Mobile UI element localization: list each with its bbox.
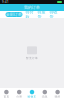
- button[interactable]: 全部订单: [5, 12, 22, 17]
- staticText: 我的: [55, 95, 61, 98]
- button[interactable]: 待付款: [24, 12, 34, 17]
- staticText: 分类: [16, 95, 22, 98]
- button[interactable]: 购物车: [26, 90, 38, 98]
- staticText: 待收货: [49, 10, 57, 19]
- button[interactable]: 消息: [38, 90, 51, 98]
- staticText: 待付款: [25, 10, 33, 19]
- staticText: 购物车: [27, 95, 36, 98]
- button[interactable]: 待收货: [48, 12, 58, 17]
- staticText: 消息: [42, 95, 48, 98]
- staticText: 全部订单: [6, 12, 22, 17]
- button[interactable]: 首页: [0, 90, 13, 98]
- staticText: 待发货: [37, 10, 45, 19]
- staticText: 暂无订单: [26, 56, 38, 60]
- button[interactable]: 待发货: [36, 12, 46, 17]
- button[interactable]: 分类: [13, 90, 26, 98]
- staticText: 我的订单: [24, 5, 40, 10]
- staticText: 首页: [3, 95, 9, 98]
- button[interactable]: 我的: [51, 90, 64, 98]
- staticText: 9:41: [2, 0, 9, 4]
